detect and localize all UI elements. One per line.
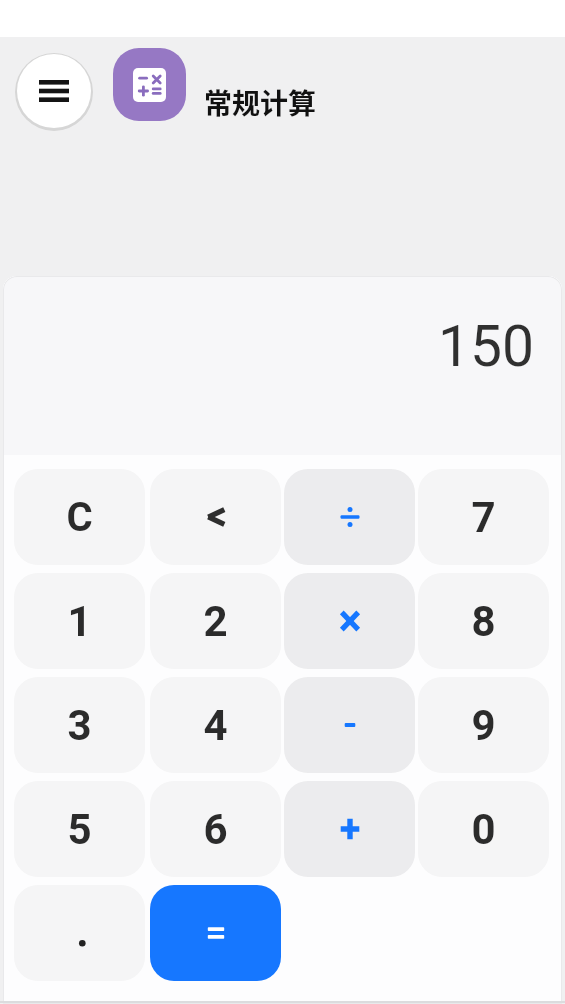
button[interactable]	[14, 885, 145, 981]
button[interactable]	[284, 469, 415, 565]
button[interactable]: 7	[418, 469, 549, 565]
button[interactable]	[284, 781, 415, 877]
staticText: 6	[203, 805, 228, 854]
button[interactable]: 8	[418, 573, 549, 669]
button[interactable]	[284, 573, 415, 669]
button[interactable]: 5	[14, 781, 145, 877]
staticText: 1	[67, 597, 92, 646]
button[interactable]: 1	[14, 573, 145, 669]
button[interactable]: 2	[150, 573, 281, 669]
button[interactable]	[150, 885, 281, 981]
button[interactable]: 3	[14, 677, 145, 773]
staticText: 0	[471, 805, 496, 854]
button[interactable]: 6	[150, 781, 281, 877]
button[interactable]: 4	[150, 677, 281, 773]
staticText: 2	[203, 597, 228, 646]
staticText: 7	[471, 493, 496, 542]
staticText: 9	[471, 701, 496, 750]
button[interactable]: 9	[418, 677, 549, 773]
staticText: 5	[67, 805, 92, 854]
staticText: 常规计算	[204, 82, 317, 123]
button[interactable]	[17, 54, 91, 128]
staticText: 150	[438, 313, 535, 380]
staticText: C	[66, 494, 93, 541]
staticText: 4	[203, 701, 228, 750]
staticText: 8	[471, 597, 496, 646]
staticText: 3	[67, 701, 92, 750]
button[interactable]	[284, 677, 415, 773]
button[interactable]	[150, 469, 281, 565]
button[interactable]: C	[14, 469, 145, 565]
button[interactable]: 0	[418, 781, 549, 877]
